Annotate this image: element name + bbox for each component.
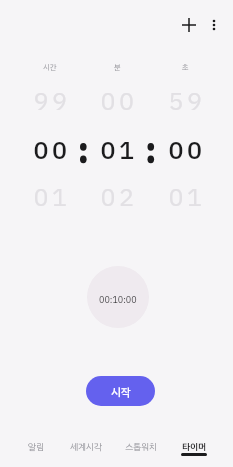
button[interactable]: More options <box>199 10 229 40</box>
staticText: 02 <box>100 179 138 217</box>
staticText: 세계시각 <box>70 440 103 454</box>
button[interactable]: 시작 <box>86 376 155 406</box>
staticText: 알림 <box>28 440 45 454</box>
staticText: 01 <box>33 179 71 217</box>
button[interactable]: 스톱워치 <box>114 430 168 462</box>
button[interactable]: Add timer <box>172 8 206 42</box>
staticText: 초 <box>182 62 189 73</box>
staticText: 시작 <box>111 384 131 401</box>
staticText: 시간 <box>43 62 57 73</box>
staticText: 타이머 <box>182 440 207 454</box>
staticText: 01 <box>100 132 138 170</box>
staticText: 분 <box>114 62 121 73</box>
staticText: 00 <box>168 132 206 170</box>
staticText: 00:10:00 <box>99 293 137 307</box>
button[interactable]: 알림 <box>9 430 63 462</box>
staticText: 01 <box>168 179 206 217</box>
button[interactable]: 타이머 <box>167 430 221 462</box>
button[interactable]: 00:10:00 <box>87 266 149 328</box>
staticText: 99 <box>33 83 71 121</box>
staticText: 00 <box>100 83 138 121</box>
button[interactable]: 세계시각 <box>59 430 113 462</box>
staticText: 00 <box>33 132 71 170</box>
staticText: 스톱워치 <box>125 440 158 454</box>
staticText: 59 <box>168 83 206 121</box>
